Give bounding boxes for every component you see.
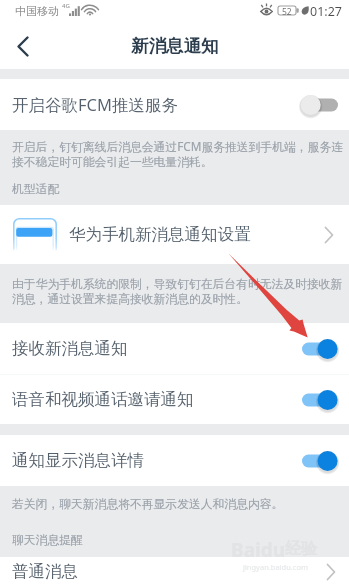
button[interactable]: On xyxy=(302,388,338,412)
staticText: 开启后，钉钉离线后消息会通过FCM服务推送到手机端，服务连接不稳定时可能会引起一… xyxy=(12,138,347,170)
staticText: 新消息通知 xyxy=(131,35,219,57)
button[interactable]: 普通消息 xyxy=(0,557,349,586)
button[interactable]: 接收新消息通知 xyxy=(0,323,349,374)
staticText: 01:27 xyxy=(310,3,342,20)
button[interactable]: Off xyxy=(302,93,338,117)
button[interactable]: On xyxy=(302,449,338,473)
staticText: 4G xyxy=(62,2,70,10)
staticText: 若关闭，聊天新消息将不再显示发送人和消息内容。 xyxy=(12,497,284,512)
staticText: 普通消息 xyxy=(12,561,78,582)
button[interactable]: 语音和视频通话邀请通知 xyxy=(0,375,349,424)
staticText: 由于华为手机系统的限制，导致钉钉在后台有时无法及时接收新消息，通过设置来提高接收… xyxy=(12,277,347,307)
staticText: 中国移动 xyxy=(15,4,59,18)
staticText: 通知显示消息详情 xyxy=(12,450,144,471)
button[interactable]: 开启谷歌FCM推送服务 xyxy=(0,79,349,130)
button[interactable]: 通知显示消息详情 xyxy=(0,435,349,486)
staticText: 华为手机新消息通知设置 xyxy=(69,224,251,245)
staticText: jingyan.baidu.com xyxy=(243,562,308,572)
button[interactable]: Back xyxy=(0,23,46,69)
staticText: 语音和视频通话邀请通知 xyxy=(12,389,194,410)
staticText: 机型适配 xyxy=(12,182,60,197)
staticText: 52 xyxy=(282,6,292,18)
staticText: Baidu xyxy=(231,537,286,563)
staticText: 经验 xyxy=(285,539,317,559)
staticText: 开启谷歌FCM推送服务 xyxy=(12,93,178,116)
staticText: 接收新消息通知 xyxy=(12,338,128,359)
button[interactable]: 华为手机新消息通知设置 xyxy=(0,205,349,264)
button[interactable]: On xyxy=(302,337,338,361)
staticText: 聊天消息提醒 xyxy=(12,533,83,548)
